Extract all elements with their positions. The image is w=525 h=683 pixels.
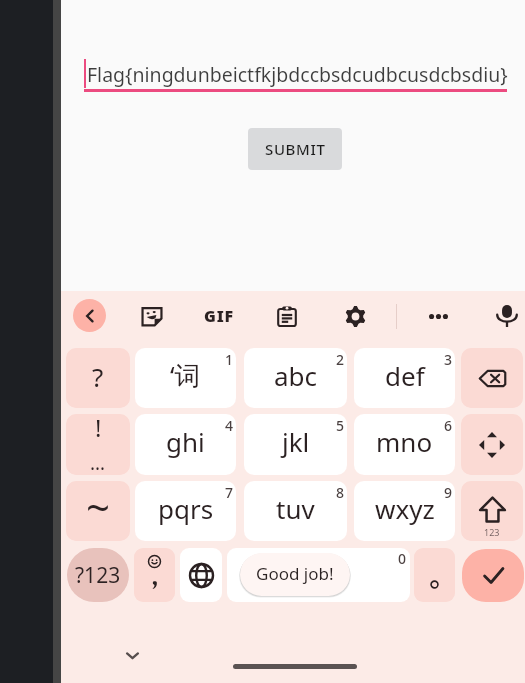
- staticText: ‘词: [170, 357, 201, 393]
- button[interactable]: Question mark: [66, 348, 130, 408]
- button[interactable]: Delete: [461, 348, 523, 408]
- button[interactable]: More options: [420, 298, 456, 334]
- staticText: 123: [484, 526, 500, 538]
- button[interactable]: ?123: [67, 548, 129, 602]
- button[interactable]: Move cursor: [461, 414, 523, 475]
- staticText: !: [95, 414, 102, 444]
- staticText: 5: [336, 416, 345, 435]
- staticText: 1: [225, 350, 234, 369]
- staticText: 9: [444, 483, 453, 502]
- staticText: SUBMIT: [265, 139, 326, 159]
- button[interactable]: SUBMIT: [248, 128, 342, 170]
- button[interactable]: ‘词: [135, 348, 236, 408]
- staticText: 2: [336, 350, 345, 369]
- staticText: abc: [274, 358, 318, 393]
- staticText: 7: [225, 483, 234, 502]
- button[interactable]: Tilde: [66, 481, 130, 541]
- button[interactable]: Exclamation and symbols: [66, 414, 130, 475]
- staticText: GIF: [204, 305, 234, 327]
- staticText: Flag{ningdunbeictfkjbdccbsdcudbcusdcbsdi…: [87, 61, 508, 88]
- staticText: 3: [444, 350, 453, 369]
- staticText: tuv: [276, 491, 315, 526]
- staticText: pqrs: [158, 491, 214, 526]
- button[interactable]: mno: [354, 414, 455, 475]
- button[interactable]: Stickers: [134, 298, 170, 334]
- button[interactable]: abc: [244, 348, 347, 408]
- button[interactable]: jkl: [244, 414, 347, 475]
- staticText: ghi: [166, 424, 205, 459]
- button[interactable]: Back: [73, 299, 106, 332]
- button[interactable]: Flag{ningdunbeictfkjbdccbsdcudbcusdcbsdi…: [84, 57, 507, 90]
- staticText: 8: [336, 483, 345, 502]
- button[interactable]: tuv: [244, 481, 347, 541]
- button[interactable]: Space: [227, 548, 410, 602]
- button[interactable]: pqrs: [135, 481, 236, 541]
- staticText: …: [90, 450, 106, 475]
- button[interactable]: Period: [414, 548, 455, 602]
- staticText: wxyz: [375, 491, 435, 526]
- button[interactable]: def: [354, 348, 455, 408]
- staticText: ?: [92, 359, 104, 394]
- button[interactable]: Hide keyboard: [116, 639, 148, 671]
- button[interactable]: Enter: [462, 549, 524, 602]
- staticText: 6: [444, 416, 453, 435]
- button[interactable]: Settings: [337, 298, 373, 334]
- button[interactable]: GIF: [201, 298, 237, 334]
- staticText: Good job!: [256, 562, 334, 585]
- staticText: ~: [86, 481, 111, 535]
- button[interactable]: Voice input: [489, 298, 525, 334]
- staticText: ?123: [75, 561, 121, 590]
- button[interactable]: Emoji and comma: [134, 548, 175, 602]
- button[interactable]: Change keyboard language: [180, 548, 222, 602]
- button[interactable]: Shift: [461, 481, 523, 541]
- staticText: mno: [376, 424, 433, 459]
- button[interactable]: Clipboard: [269, 298, 305, 334]
- staticText: 4: [225, 416, 234, 435]
- staticText: 0: [398, 549, 407, 568]
- staticText: def: [385, 358, 425, 393]
- button[interactable]: wxyz: [354, 481, 455, 541]
- staticText: jkl: [282, 424, 310, 459]
- button[interactable]: ghi: [135, 414, 236, 475]
